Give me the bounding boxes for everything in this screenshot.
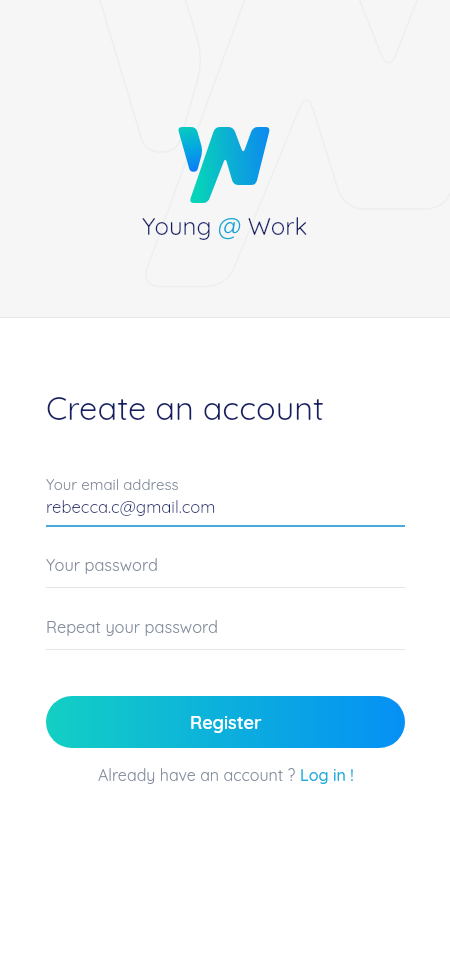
button[interactable]: Log in ! <box>300 765 354 785</box>
button[interactable]: Register <box>46 696 405 748</box>
staticText: rebecca.c@gmail.com <box>46 496 216 517</box>
button[interactable]: Your email address <box>46 475 405 527</box>
staticText: Your password <box>46 555 158 575</box>
staticText: Young @ Work <box>142 211 308 241</box>
staticText: Your email address <box>46 475 179 494</box>
staticText: Create an account <box>46 387 324 428</box>
staticText: Repeat your password <box>46 617 218 637</box>
staticText: Register <box>190 711 262 734</box>
button[interactable]: Repeat your password <box>46 617 405 650</box>
button[interactable]: Your password <box>46 555 405 588</box>
staticText: Already have an account ? <box>98 765 300 785</box>
